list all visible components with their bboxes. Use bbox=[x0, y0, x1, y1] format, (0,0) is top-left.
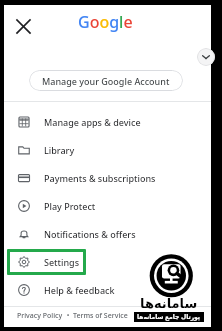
button[interactable]: Manage your Google Account bbox=[29, 70, 183, 91]
button[interactable]: Expand account list bbox=[197, 48, 215, 66]
staticText: Payments & subscriptions bbox=[44, 172, 156, 184]
button[interactable]: Library bbox=[4, 136, 211, 164]
button[interactable]: Help & feedback bbox=[4, 276, 211, 304]
staticText: Google bbox=[78, 11, 133, 33]
staticText: Library bbox=[44, 144, 75, 156]
button[interactable]: Manage apps & device bbox=[4, 108, 211, 136]
staticText: Help & feedback bbox=[44, 284, 115, 296]
staticText: Privacy Policy bbox=[17, 311, 63, 321]
button[interactable]: Privacy Policy bbox=[17, 311, 63, 321]
staticText: • bbox=[63, 311, 73, 321]
staticText: Notifications & offers bbox=[44, 228, 136, 240]
staticText: Terms of Service bbox=[73, 311, 128, 321]
button[interactable]: Play Protect bbox=[4, 192, 211, 220]
staticText: Manage your Google Account bbox=[42, 75, 170, 87]
button[interactable]: Terms of Service bbox=[73, 311, 128, 321]
button[interactable]: Close bbox=[8, 11, 38, 41]
staticText: Manage apps & device bbox=[44, 116, 141, 128]
staticText: پورتال جامع سامانه‌ها bbox=[137, 313, 201, 321]
staticText: سامانه‌ها bbox=[140, 296, 198, 311]
button[interactable]: Settings bbox=[4, 248, 211, 276]
button[interactable]: Payments & subscriptions bbox=[4, 164, 211, 192]
button[interactable]: Notifications & offers bbox=[4, 220, 211, 248]
staticText: Play Protect bbox=[44, 200, 96, 212]
staticText: Settings bbox=[44, 256, 80, 268]
